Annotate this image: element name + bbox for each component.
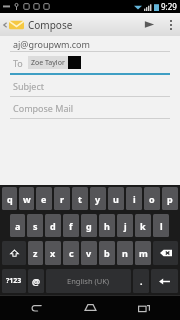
staticText: f <box>69 220 73 232</box>
staticText: j <box>124 220 127 232</box>
button[interactable]: Enter <box>151 269 178 293</box>
button[interactable]: Subject <box>0 75 180 97</box>
button[interactable]: h <box>99 214 115 237</box>
staticText: English (UK) <box>67 276 110 286</box>
staticText: Compose Mail <box>13 102 74 114</box>
button[interactable]: n <box>117 241 133 265</box>
button[interactable]: ?123 <box>2 269 26 293</box>
button[interactable]: s <box>27 214 43 237</box>
button[interactable]: Compose Mail <box>0 97 180 119</box>
button[interactable]: y <box>90 187 106 210</box>
staticText: n <box>122 247 128 259</box>
staticText: o <box>149 193 155 205</box>
button[interactable]: Recent apps <box>127 295 161 320</box>
button[interactable]: j <box>117 214 133 237</box>
button[interactable]: u <box>108 187 124 210</box>
staticText: y <box>95 193 101 205</box>
button[interactable]: More options <box>162 13 180 36</box>
staticText: e <box>41 193 47 205</box>
button[interactable]: aj@groupwm.com <box>0 36 180 52</box>
button[interactable]: p <box>162 187 178 210</box>
button[interactable]: b <box>99 241 115 265</box>
button[interactable]: a <box>10 214 25 237</box>
staticText: @ <box>32 275 41 287</box>
button[interactable]: To <box>0 52 180 75</box>
button[interactable]: t <box>72 187 88 210</box>
button[interactable]: e <box>36 187 52 210</box>
staticText: r <box>60 193 65 205</box>
button[interactable]: m <box>135 241 151 265</box>
button[interactable]: x <box>45 241 61 265</box>
staticText: z <box>33 247 38 259</box>
other: Back <box>2 22 8 28</box>
staticText: Compose <box>28 18 73 32</box>
staticText: u <box>113 193 119 205</box>
button[interactable]: Send <box>136 13 162 36</box>
button[interactable]: Shift <box>2 241 26 265</box>
staticText: ?123 <box>6 276 22 286</box>
button[interactable]: d <box>45 214 61 237</box>
button[interactable]: Backspace <box>153 241 178 265</box>
button[interactable]: Back <box>20 295 54 320</box>
staticText: m <box>139 247 148 259</box>
staticText: s <box>33 220 38 232</box>
staticText: Subject <box>13 80 45 92</box>
button[interactable]: c <box>63 241 79 265</box>
button[interactable]: k <box>135 214 151 237</box>
button[interactable]: English (UK) <box>46 269 131 293</box>
button[interactable]: f <box>63 214 79 237</box>
staticText: To <box>13 57 23 69</box>
staticText: h <box>104 220 110 232</box>
button[interactable]: z <box>28 241 43 265</box>
staticText: v <box>86 247 92 259</box>
staticText: 9:29 <box>161 1 177 12</box>
staticText: b <box>104 247 110 259</box>
staticText: w <box>23 193 31 205</box>
button[interactable]: i <box>126 187 142 210</box>
staticText: l <box>160 220 163 232</box>
staticText: k <box>140 220 146 232</box>
staticText: q <box>7 193 13 205</box>
button[interactable]: . <box>133 269 149 293</box>
button[interactable]: Back <box>0 13 77 36</box>
staticText: Zoe Taylor <box>31 58 65 68</box>
staticText: p <box>167 193 173 205</box>
button[interactable]: @ <box>28 269 44 293</box>
button[interactable]: o <box>144 187 160 210</box>
staticText: i <box>133 193 136 205</box>
staticText: t <box>78 193 82 205</box>
button[interactable]: Home <box>73 295 107 320</box>
staticText: g <box>86 220 92 232</box>
staticText: a <box>15 220 21 232</box>
staticText: d <box>50 220 56 232</box>
button[interactable]: r <box>54 187 70 210</box>
button[interactable]: v <box>81 241 97 265</box>
button[interactable]: l <box>153 214 169 237</box>
button[interactable]: w <box>19 187 34 210</box>
staticText: . <box>140 275 143 287</box>
staticText: aj@groupwm.com <box>13 38 90 50</box>
button[interactable]: g <box>81 214 97 237</box>
staticText: x <box>50 247 56 259</box>
staticText: c <box>69 247 74 259</box>
button[interactable]: q <box>2 187 17 210</box>
